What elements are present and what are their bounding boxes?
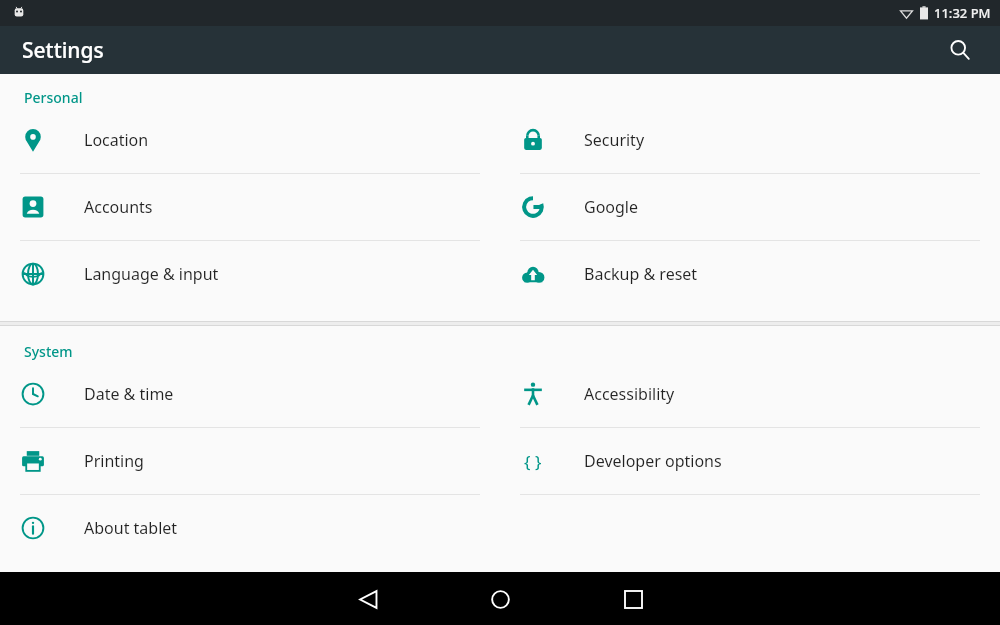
button[interactable]: Google [500,174,1000,240]
button[interactable]: Location [0,107,500,173]
button[interactable]: Backup & reset [500,241,1000,307]
button[interactable]: Language & input [0,241,500,307]
staticText: Language & input [84,263,219,285]
button[interactable]: Back [344,575,392,623]
button[interactable]: Printing [0,428,500,494]
button[interactable]: Accessibility [500,361,1000,427]
staticText: Settings [22,36,104,65]
staticText: Printing [84,450,144,472]
button[interactable]: Home [476,575,524,623]
button[interactable]: Recent apps [609,575,657,623]
button[interactable]: About tablet [0,495,500,561]
staticText: About tablet [84,517,178,539]
staticText: Accessibility [584,383,675,405]
staticText: Backup & reset [584,263,698,285]
button[interactable]: Date & time [0,361,500,427]
staticText: Location [84,129,149,151]
button[interactable]: Security [500,107,1000,173]
staticText: System [24,342,73,361]
staticText: Security [584,129,645,151]
staticText: Accounts [84,196,153,218]
staticText: Google [584,196,639,218]
staticText: Date & time [84,383,174,405]
staticText: { } [524,450,542,473]
button[interactable]: Search [940,30,980,70]
staticText: Developer options [584,450,722,472]
staticText: 11:32 PM [934,4,991,22]
button[interactable]: Accounts [0,174,500,240]
button[interactable]: { } [500,428,1000,494]
staticText: Personal [24,88,83,107]
